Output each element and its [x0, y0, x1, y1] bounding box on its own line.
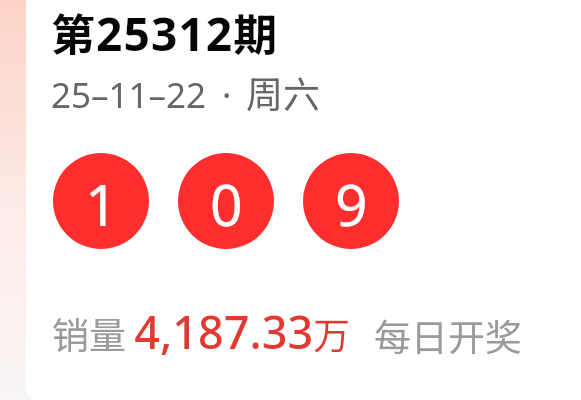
button[interactable]: 第25312期	[26, 0, 581, 400]
button[interactable]: 1	[53, 153, 149, 249]
staticText: 周六	[246, 65, 320, 119]
staticText: 9	[335, 165, 368, 243]
staticText: 0	[210, 165, 243, 243]
staticText: 1	[85, 165, 118, 243]
button[interactable]: 0	[178, 153, 274, 249]
staticText: 25–11–22	[51, 71, 207, 119]
staticText: 每日开奖	[374, 308, 522, 362]
staticText: ·	[222, 71, 232, 119]
staticText: 销量 4,187.33万	[52, 301, 351, 362]
button[interactable]: 9	[303, 153, 399, 249]
staticText: 第25312期	[51, 0, 279, 65]
